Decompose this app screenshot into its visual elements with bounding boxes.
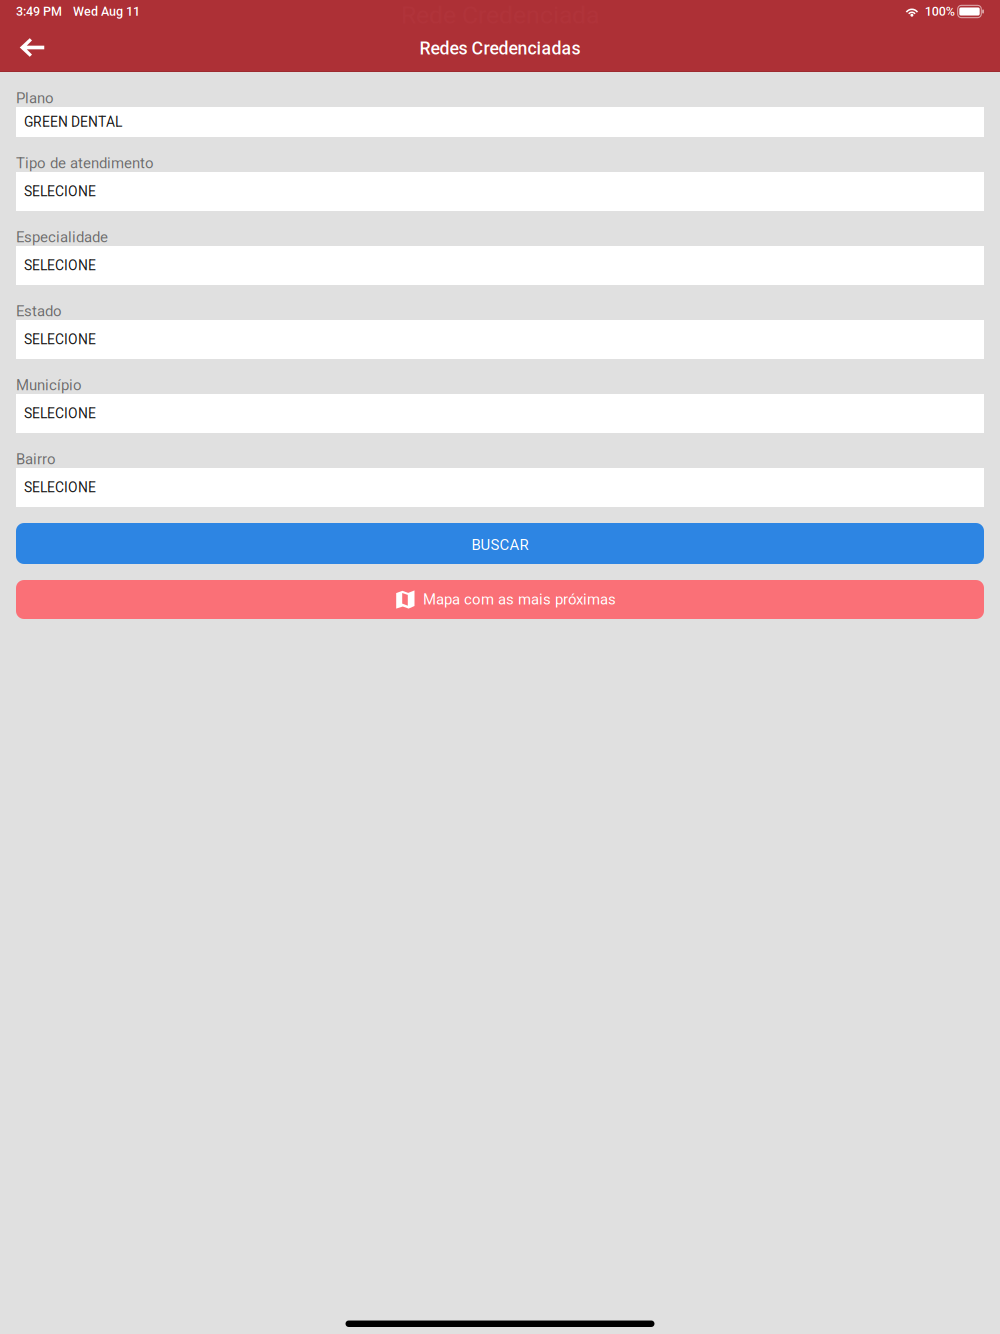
staticText: SELECIONE <box>24 257 96 274</box>
staticText: Mapa com as mais próximas <box>423 591 616 608</box>
staticText: Bairro <box>16 450 56 468</box>
staticText: SELECIONE <box>24 183 96 200</box>
staticText: Wed Aug 11 <box>73 4 140 19</box>
button[interactable]: GREEN DENTAL <box>16 107 984 137</box>
staticText: SELECIONE <box>24 331 96 348</box>
staticText: Estado <box>16 302 62 320</box>
staticText: Redes Credenciadas <box>419 38 580 59</box>
button[interactable]: SELECIONE <box>16 394 984 433</box>
staticText: GREEN DENTAL <box>24 114 122 130</box>
staticText: 3:49 PM <box>16 4 62 19</box>
button[interactable]: Mapa com as mais próximas <box>16 580 984 619</box>
button[interactable]: SELECIONE <box>16 320 984 359</box>
button[interactable]: SELECIONE <box>16 172 984 211</box>
button[interactable]: BUSCAR <box>16 523 984 564</box>
staticText: Tipo de atendimento <box>16 154 154 172</box>
button[interactable]: SELECIONE <box>16 246 984 285</box>
staticText: Especialidade <box>16 228 108 246</box>
button[interactable]: Back <box>8 25 56 69</box>
staticText: SELECIONE <box>24 405 96 422</box>
staticText: SELECIONE <box>24 479 96 496</box>
button[interactable]: SELECIONE <box>16 468 984 507</box>
staticText: 100% <box>925 4 955 19</box>
staticText: Plano <box>16 89 54 107</box>
staticText: Município <box>16 376 82 394</box>
staticText: BUSCAR <box>471 536 528 554</box>
